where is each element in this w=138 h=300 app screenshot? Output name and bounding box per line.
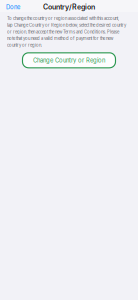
button[interactable]: Done (0, 0, 26, 13)
staticText: Country/Region (43, 3, 95, 11)
staticText: note that you need a valid method of pay… (7, 36, 113, 41)
staticText: Change Country or Region (33, 57, 105, 64)
staticText: or region, then accept the new Terms and… (7, 29, 119, 34)
staticText: To change the country or region associat… (7, 16, 119, 21)
staticText: country or region. (7, 43, 42, 48)
button[interactable]: Change Country or Region (22, 53, 115, 68)
staticText: Done (6, 3, 20, 11)
staticText: tap Change Country or Region below, sele… (7, 23, 126, 28)
